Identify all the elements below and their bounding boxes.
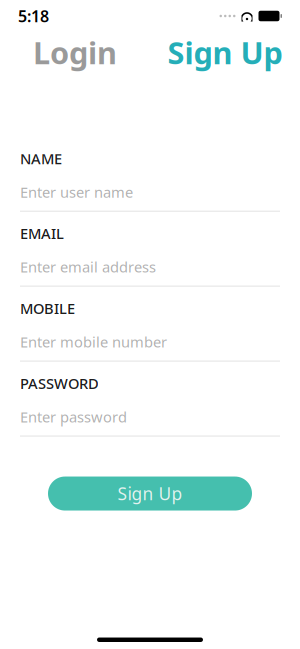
staticText: Enter user name bbox=[20, 182, 133, 202]
button[interactable]: Sign Up bbox=[48, 476, 252, 510]
button[interactable]: Enter user name bbox=[20, 168, 280, 211]
staticText: 5:18 bbox=[18, 5, 49, 27]
button[interactable]: Enter email address bbox=[20, 243, 280, 286]
button[interactable]: Enter password bbox=[20, 393, 280, 436]
staticText: NAME bbox=[20, 149, 62, 168]
staticText: Login bbox=[33, 32, 117, 73]
staticText: Enter email address bbox=[20, 257, 156, 277]
staticText: Sign Up bbox=[117, 482, 182, 505]
button[interactable]: Login bbox=[0, 26, 150, 79]
staticText: PASSWORD bbox=[20, 374, 99, 393]
staticText: EMAIL bbox=[20, 224, 64, 243]
staticText: Enter password bbox=[20, 407, 127, 427]
button[interactable]: Enter mobile number bbox=[20, 318, 280, 361]
staticText: MOBILE bbox=[20, 299, 75, 318]
staticText: Enter mobile number bbox=[20, 332, 167, 352]
button[interactable]: Sign Up bbox=[150, 26, 300, 79]
staticText: Sign Up bbox=[167, 32, 282, 73]
